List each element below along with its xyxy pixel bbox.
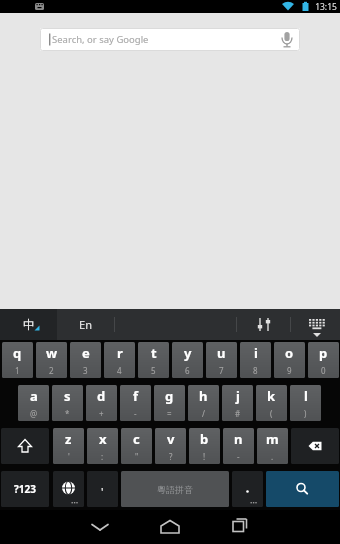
staticText: 3 bbox=[83, 365, 88, 376]
button[interactable]: 粵語拼音 bbox=[121, 471, 229, 507]
button[interactable]: x bbox=[87, 428, 118, 464]
staticText: b bbox=[200, 430, 209, 448]
staticText: h bbox=[199, 387, 208, 405]
button[interactable]: g bbox=[154, 385, 185, 421]
staticText: f bbox=[133, 387, 139, 405]
staticText: / bbox=[202, 408, 205, 419]
staticText: p bbox=[319, 344, 328, 362]
staticText: 7 bbox=[219, 365, 224, 376]
staticText: ' bbox=[68, 451, 70, 462]
button[interactable] bbox=[220, 510, 260, 544]
staticText: a bbox=[30, 387, 38, 405]
staticText: v bbox=[167, 430, 175, 448]
button[interactable]: d bbox=[86, 385, 117, 421]
button[interactable]: p bbox=[308, 342, 339, 378]
staticText: En bbox=[79, 317, 92, 332]
button[interactable]: n bbox=[223, 428, 254, 464]
staticText: " bbox=[135, 451, 139, 462]
staticText: @ bbox=[30, 408, 38, 419]
staticText: c bbox=[133, 430, 140, 448]
button[interactable]: y bbox=[172, 342, 203, 378]
staticText: 中 bbox=[23, 317, 35, 332]
staticText: * bbox=[65, 408, 70, 419]
staticText: ! bbox=[203, 451, 206, 462]
staticText: t bbox=[151, 344, 157, 362]
button[interactable]: ' bbox=[87, 471, 118, 507]
button[interactable]: v bbox=[155, 428, 186, 464]
staticText: u bbox=[217, 344, 226, 362]
staticText: s bbox=[64, 387, 71, 405]
staticText: # bbox=[235, 408, 241, 419]
button[interactable]: f bbox=[120, 385, 151, 421]
button[interactable]: r bbox=[104, 342, 135, 378]
staticText: o bbox=[285, 344, 294, 362]
button[interactable]: a bbox=[18, 385, 49, 421]
staticText: . bbox=[271, 451, 274, 462]
staticText: ?123 bbox=[14, 482, 36, 496]
staticText: : bbox=[101, 451, 104, 462]
staticText: g bbox=[165, 387, 174, 405]
staticText: 6 bbox=[185, 365, 190, 376]
button[interactable] bbox=[1, 428, 49, 464]
staticText: - bbox=[237, 451, 240, 462]
button[interactable]: o bbox=[274, 342, 305, 378]
button[interactable]: z bbox=[53, 428, 84, 464]
staticText: n bbox=[234, 430, 243, 448]
staticText: m bbox=[266, 430, 279, 448]
button[interactable]: m bbox=[257, 428, 288, 464]
button[interactable] bbox=[40, 28, 300, 51]
button[interactable]: q bbox=[2, 342, 33, 378]
button[interactable] bbox=[232, 471, 263, 507]
staticText: Search, or say Google bbox=[52, 33, 149, 46]
staticText: x bbox=[99, 430, 107, 448]
button[interactable]: k bbox=[256, 385, 287, 421]
button[interactable] bbox=[57, 309, 114, 340]
button[interactable]: t bbox=[138, 342, 169, 378]
button[interactable] bbox=[53, 471, 84, 507]
staticText: i bbox=[254, 344, 258, 362]
staticText: r bbox=[117, 344, 123, 362]
staticText: ) bbox=[304, 408, 307, 419]
button[interactable] bbox=[150, 510, 190, 544]
staticText: ? bbox=[169, 451, 173, 462]
button[interactable] bbox=[291, 428, 339, 464]
staticText: q bbox=[13, 344, 22, 362]
staticText: z bbox=[65, 430, 72, 448]
staticText: y bbox=[184, 344, 192, 362]
button[interactable]: ?123 bbox=[1, 471, 49, 507]
button[interactable]: b bbox=[189, 428, 220, 464]
staticText: 13:15 bbox=[315, 1, 337, 13]
staticText: 1 bbox=[15, 365, 20, 376]
staticText: - bbox=[134, 408, 137, 419]
staticText: l bbox=[304, 387, 308, 405]
staticText: d bbox=[97, 387, 106, 405]
button[interactable]: i bbox=[240, 342, 271, 378]
button[interactable] bbox=[0, 309, 57, 340]
staticText: 0 bbox=[321, 365, 326, 376]
staticText: 9 bbox=[287, 365, 292, 376]
staticText: 4 bbox=[117, 365, 122, 376]
button[interactable]: e bbox=[70, 342, 101, 378]
staticText: ( bbox=[270, 408, 273, 419]
staticText: 2 bbox=[49, 365, 54, 376]
button[interactable]: w bbox=[36, 342, 67, 378]
staticText: ' bbox=[101, 484, 104, 499]
staticText: k bbox=[267, 387, 276, 405]
button[interactable]: c bbox=[121, 428, 152, 464]
button[interactable] bbox=[80, 510, 120, 544]
button[interactable]: u bbox=[206, 342, 237, 378]
button[interactable]: s bbox=[52, 385, 83, 421]
button[interactable]: j bbox=[222, 385, 253, 421]
staticText: + bbox=[99, 408, 104, 419]
button[interactable] bbox=[266, 471, 339, 507]
staticText: 5 bbox=[151, 365, 156, 376]
staticText: 8 bbox=[253, 365, 258, 376]
button[interactable]: h bbox=[188, 385, 219, 421]
staticText: e bbox=[82, 344, 90, 362]
staticText: w bbox=[46, 344, 58, 362]
staticText: 粵語拼音 bbox=[157, 484, 193, 495]
staticText: j bbox=[236, 387, 240, 405]
staticText: = bbox=[167, 408, 172, 419]
button[interactable]: l bbox=[290, 385, 321, 421]
